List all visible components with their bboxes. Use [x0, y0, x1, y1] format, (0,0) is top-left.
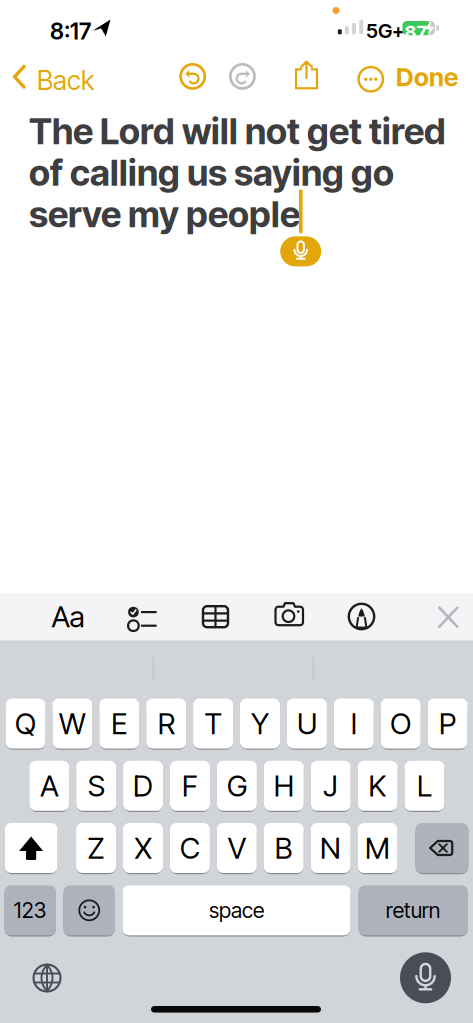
button[interactable]: Checklist: [118, 597, 162, 637]
button[interactable]: G: [217, 761, 257, 811]
button[interactable]: S: [76, 761, 116, 811]
staticText: Z: [88, 831, 105, 865]
button[interactable]: R: [146, 698, 186, 748]
button[interactable]: Camera: [266, 597, 310, 637]
button[interactable]: Markup: [339, 597, 383, 637]
staticText: D: [133, 768, 153, 803]
button[interactable]: E: [99, 698, 139, 748]
button[interactable]: Next keyboard: [27, 958, 67, 998]
staticText: G: [227, 768, 247, 803]
staticText: O: [390, 706, 411, 741]
button[interactable]: W: [52, 698, 92, 748]
button[interactable]: V: [217, 823, 257, 873]
button[interactable]: Redo: [227, 61, 257, 91]
button[interactable]: Dictation: [280, 236, 321, 266]
staticText: 5G+: [366, 19, 405, 43]
staticText: N: [320, 831, 341, 865]
staticText: F: [182, 768, 198, 803]
staticText: U: [297, 706, 317, 741]
staticText: T: [205, 706, 222, 741]
staticText: Back: [37, 64, 94, 96]
staticText: of calling us saying go: [29, 151, 394, 194]
staticText: serve my people: [29, 193, 300, 235]
staticText: E: [111, 706, 127, 741]
button[interactable]: H: [264, 761, 304, 811]
button[interactable]: P: [428, 698, 468, 748]
staticText: 123: [14, 898, 47, 923]
button[interactable]: Delete: [415, 823, 468, 873]
button[interactable]: Dictate: [400, 952, 451, 1003]
button[interactable]: Done: [392, 57, 462, 97]
staticText: Aa: [51, 599, 84, 634]
staticText: 8:17: [50, 18, 91, 45]
button[interactable]: 123: [4, 885, 56, 935]
staticText: W: [59, 706, 86, 741]
button[interactable]: Dismiss keyboard: [426, 597, 470, 637]
button[interactable]: Emoji: [63, 885, 115, 935]
staticText: Y: [251, 706, 269, 741]
staticText: P: [439, 706, 456, 741]
button[interactable]: Z: [76, 823, 116, 873]
button[interactable]: M: [357, 823, 397, 873]
staticText: B: [275, 831, 293, 865]
staticText: H: [274, 768, 294, 803]
button[interactable]: L: [404, 761, 444, 811]
button[interactable]: return: [358, 885, 468, 935]
staticText: C: [180, 831, 200, 865]
button[interactable]: J: [311, 761, 351, 811]
button[interactable]: X: [123, 823, 163, 873]
button[interactable]: Undo: [178, 61, 208, 91]
staticText: return: [386, 898, 441, 923]
staticText: K: [369, 768, 387, 803]
button[interactable]: D: [123, 761, 163, 811]
button[interactable]: U: [287, 698, 327, 748]
staticText: L: [417, 768, 432, 803]
button[interactable]: Back: [0, 56, 90, 98]
staticText: space: [209, 898, 264, 923]
button[interactable]: space: [122, 885, 350, 935]
button[interactable]: Format: [46, 597, 90, 637]
button[interactable]: F: [170, 761, 210, 811]
button[interactable]: Q: [5, 698, 45, 748]
button[interactable]: Shift: [5, 823, 57, 873]
button[interactable]: K: [358, 761, 398, 811]
staticText: X: [134, 831, 151, 865]
staticText: The Lord will not get tired: [29, 110, 446, 152]
staticText: S: [88, 768, 105, 803]
staticText: Q: [15, 706, 36, 741]
button[interactable]: B: [264, 823, 304, 873]
button[interactable]: I: [334, 698, 374, 748]
button[interactable]: Y: [240, 698, 280, 748]
button[interactable]: A: [29, 761, 69, 811]
staticText: M: [365, 831, 390, 865]
staticText: I: [351, 706, 357, 741]
staticText: R: [158, 706, 175, 741]
button[interactable]: O: [381, 698, 421, 748]
button[interactable]: Share: [290, 59, 320, 91]
button[interactable]: T: [193, 698, 233, 748]
button[interactable]: Table: [193, 597, 237, 637]
staticText: Done: [396, 62, 458, 92]
button[interactable]: More: [353, 61, 383, 91]
button[interactable]: N: [311, 823, 351, 873]
staticText: J: [323, 768, 338, 803]
staticText: V: [228, 831, 246, 865]
staticText: 87: [404, 21, 426, 43]
button[interactable]: C: [170, 823, 210, 873]
staticText: A: [40, 768, 58, 803]
